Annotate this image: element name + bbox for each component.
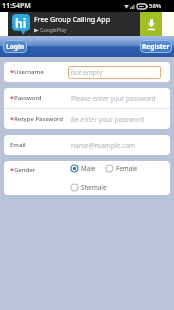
staticText: GooglePlay bbox=[40, 27, 67, 34]
staticText: Username bbox=[14, 68, 44, 76]
staticText: Free Group Calling App bbox=[34, 15, 110, 25]
staticText: Male bbox=[81, 164, 96, 173]
staticText: Female bbox=[116, 164, 138, 173]
staticText: hi bbox=[15, 15, 27, 31]
staticText: Login bbox=[6, 42, 25, 51]
staticText: Shemale bbox=[81, 183, 107, 192]
staticText: * bbox=[10, 115, 14, 125]
staticText: Please enter your password bbox=[71, 94, 156, 103]
button[interactable]: Login bbox=[3, 40, 27, 53]
staticText: name@example.com bbox=[71, 141, 136, 150]
staticText: not empty bbox=[71, 68, 103, 77]
staticText: 58% bbox=[149, 2, 162, 10]
staticText: Retype Password bbox=[14, 115, 63, 123]
staticText: Register bbox=[142, 42, 170, 51]
button[interactable]: * bbox=[4, 88, 170, 108]
staticText: * bbox=[10, 68, 14, 78]
button[interactable]: Install bbox=[140, 12, 162, 36]
button[interactable]: Female bbox=[105, 164, 138, 173]
staticText: 11:54PM bbox=[2, 1, 31, 11]
staticText: Gender bbox=[14, 166, 36, 174]
staticText: Re-enter your password bbox=[71, 115, 144, 124]
staticText: Email bbox=[10, 141, 26, 149]
button[interactable]: * bbox=[4, 62, 170, 82]
staticText: * bbox=[10, 166, 14, 176]
button[interactable]: Shemale bbox=[70, 183, 107, 192]
button[interactable]: * bbox=[4, 109, 170, 129]
staticText: * bbox=[10, 94, 14, 104]
button[interactable]: Male bbox=[70, 164, 96, 173]
button[interactable]: Register bbox=[140, 40, 172, 53]
button[interactable]: Email bbox=[4, 135, 170, 155]
staticText: Password bbox=[14, 94, 42, 102]
